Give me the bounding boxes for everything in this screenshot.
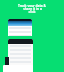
staticText: click	[28, 10, 36, 13]
staticText: share it in a	[23, 7, 42, 10]
staticText: Track your data &	[18, 4, 46, 7]
